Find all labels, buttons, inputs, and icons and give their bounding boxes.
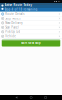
button[interactable]: Back	[15, 96, 18, 99]
staticText: Active Route Today	[5, 3, 32, 7]
staticText: Route Details	[5, 12, 24, 16]
button[interactable]: Scan Parcel	[0, 25, 62, 30]
button[interactable]: Pick Up List	[0, 30, 62, 34]
staticText: Pick Up List	[5, 30, 20, 34]
staticText: Scan Parcel	[5, 26, 19, 29]
button[interactable]: New Delivery	[0, 21, 62, 25]
staticText: 9:41	[58, 1, 61, 2]
button[interactable]: Home	[30, 96, 32, 99]
button[interactable]: Stop Notes	[0, 16, 62, 21]
staticText: Stop 4 of 18 remaining	[5, 8, 38, 11]
staticText: Vehicle	[5, 34, 16, 38]
staticText: New Delivery	[5, 21, 22, 25]
button[interactable]: Vehicle	[0, 34, 62, 39]
button[interactable]: Route Details	[0, 12, 62, 16]
button[interactable]: Start Next Stop	[2, 39, 60, 46]
staticText: Stop Notes	[5, 17, 20, 20]
staticText: Start Next Stop	[21, 41, 41, 45]
button[interactable]: Recents	[45, 96, 47, 98]
